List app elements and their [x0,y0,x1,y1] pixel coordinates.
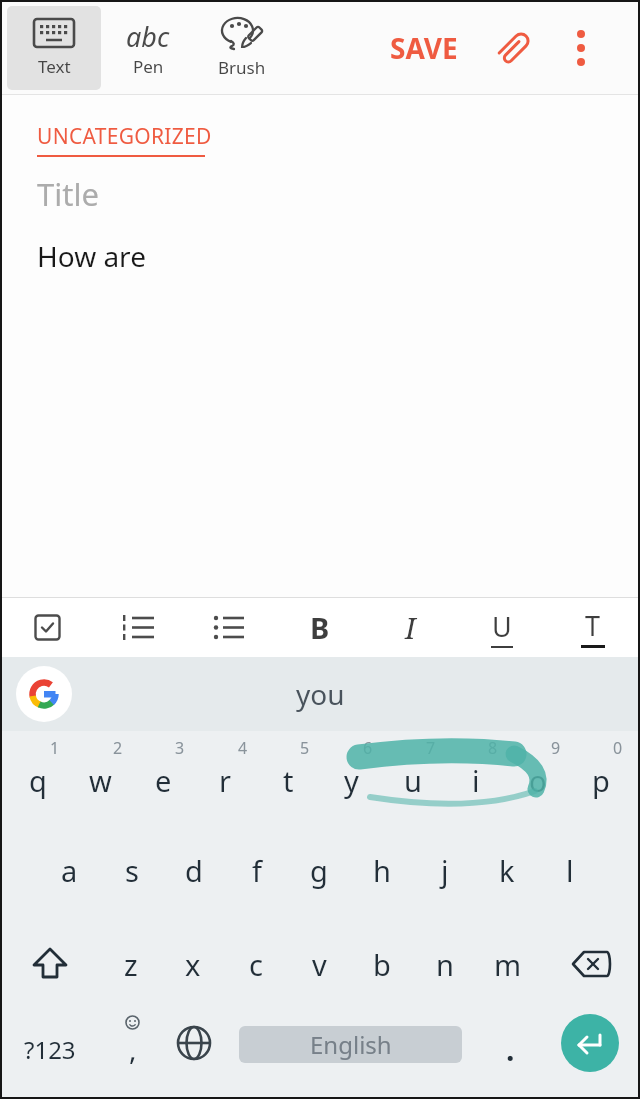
button[interactable] [550,919,634,1009]
button[interactable]: p [570,736,632,824]
button[interactable]: q [7,736,69,824]
button[interactable]: , [102,1005,162,1089]
staticText: 6 [363,737,373,759]
staticText: UNCATEGORIZED [37,122,212,151]
staticText: j [441,851,449,890]
staticText: s [125,851,139,890]
button[interactable] [492,26,536,70]
staticText: 5 [300,737,310,759]
staticText: ?123 [24,1033,76,1066]
staticText: 0 [613,737,623,759]
staticText: . [506,1029,515,1070]
button[interactable] [183,598,274,657]
button[interactable]: c [225,919,287,1009]
staticText: p [592,761,610,800]
button[interactable]: Text [7,6,101,90]
button[interactable]: U [456,598,547,657]
staticText: v [312,945,327,984]
button[interactable]: . [480,1007,540,1091]
button[interactable] [10,919,90,1009]
staticText: abc [126,18,170,48]
button[interactable]: x [162,919,224,1009]
button[interactable]: e [132,736,194,824]
button[interactable]: T [547,598,638,657]
button[interactable]: n [414,919,476,1009]
button[interactable]: i [445,736,507,824]
staticText: l [566,851,574,890]
staticText: u [404,761,422,800]
staticText: Brush [218,56,266,79]
button[interactable]: o [507,736,569,824]
button[interactable] [2,598,92,657]
staticText: c [249,945,263,984]
staticText: f [252,851,262,890]
staticText: k [499,851,515,890]
staticText: T [585,607,601,644]
button[interactable]: f [226,825,288,915]
button[interactable]: g [288,825,350,915]
staticText: d [185,851,203,890]
button[interactable]: SAVE [382,21,466,75]
staticText: r [219,761,231,800]
staticText: 7 [426,737,436,759]
staticText: o [529,761,547,800]
button[interactable]: j [414,825,476,915]
staticText: m [494,945,522,984]
staticText: q [29,761,47,800]
staticText: 1 [50,737,60,759]
staticText: b [373,945,391,984]
staticText: you [296,675,345,713]
button[interactable] [561,1014,619,1072]
staticText: 9 [551,737,561,759]
staticText: a [61,851,78,890]
staticText: How are [37,237,146,275]
button[interactable] [16,666,72,722]
button[interactable] [164,1001,224,1085]
staticText: 2 [113,737,123,759]
staticText: U [492,608,512,645]
staticText: x [185,945,201,984]
staticText: z [124,945,138,984]
staticText: 8 [488,737,498,759]
button[interactable] [561,28,601,68]
staticText: y [344,761,359,800]
staticText: Text [38,55,71,78]
staticText: i [472,761,480,800]
button[interactable]: English [239,1026,462,1063]
button[interactable]: abc [101,6,195,90]
button[interactable]: s [101,825,163,915]
button[interactable]: Brush [195,6,289,90]
button[interactable]: w [69,736,131,824]
staticText: t [283,761,294,800]
button[interactable]: v [288,919,350,1009]
button[interactable]: UNCATEGORIZED [37,122,212,157]
staticText: n [436,945,454,984]
staticText: I [405,608,416,647]
button[interactable]: ?123 [10,1007,90,1091]
button[interactable]: r [194,736,256,824]
staticText: 3 [175,737,185,759]
button[interactable]: y [320,736,382,824]
button[interactable]: you [296,675,345,713]
button[interactable]: b [351,919,413,1009]
staticText: Title [37,173,99,215]
button[interactable] [92,598,183,657]
button[interactable]: k [476,825,538,915]
staticText: SAVE [390,29,458,67]
button[interactable]: z [100,919,162,1009]
button[interactable]: t [257,736,319,824]
button[interactable]: u [382,736,444,824]
button[interactable]: a [38,825,100,915]
button[interactable]: l [539,825,601,915]
staticText: English [310,1028,392,1061]
button[interactable]: h [351,825,413,915]
staticText: , [129,1030,137,1068]
staticText: g [310,851,328,890]
staticText: 4 [238,737,248,759]
button[interactable]: B [274,598,365,657]
staticText: h [373,851,391,890]
button[interactable]: m [477,919,539,1009]
staticText: e [155,761,172,800]
button[interactable]: d [163,825,225,915]
button[interactable]: I [365,598,456,657]
